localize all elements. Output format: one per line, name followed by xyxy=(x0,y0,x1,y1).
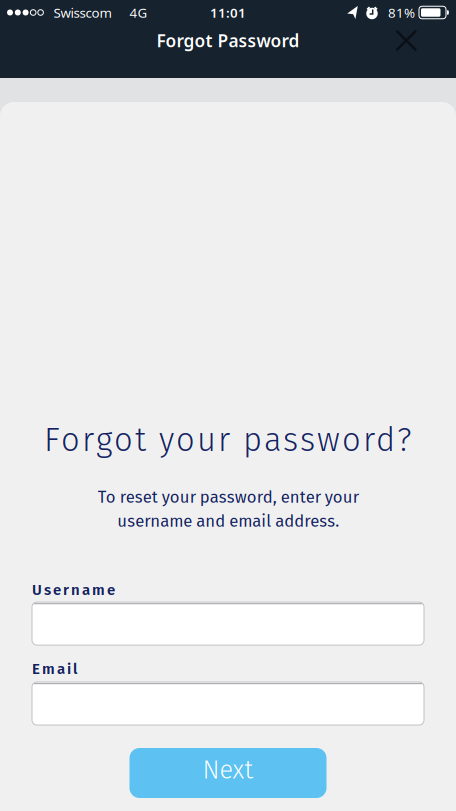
staticText: 4G xyxy=(129,4,147,21)
button[interactable] xyxy=(32,682,424,725)
button[interactable] xyxy=(396,42,456,61)
staticText: 81% xyxy=(388,4,415,21)
button[interactable]: Next xyxy=(129,748,326,798)
staticText: U s e r n a m e xyxy=(32,581,115,599)
staticText: Swisscom xyxy=(53,4,111,21)
staticText: To reset your password, enter your usern… xyxy=(97,487,358,531)
staticText: Forgot your password? xyxy=(44,420,412,460)
button[interactable] xyxy=(32,602,424,645)
staticText: E m a i l xyxy=(32,660,77,678)
staticText: 11:01 xyxy=(210,4,246,21)
staticText: Forgot Password xyxy=(156,29,299,52)
staticText: Next xyxy=(202,755,253,785)
